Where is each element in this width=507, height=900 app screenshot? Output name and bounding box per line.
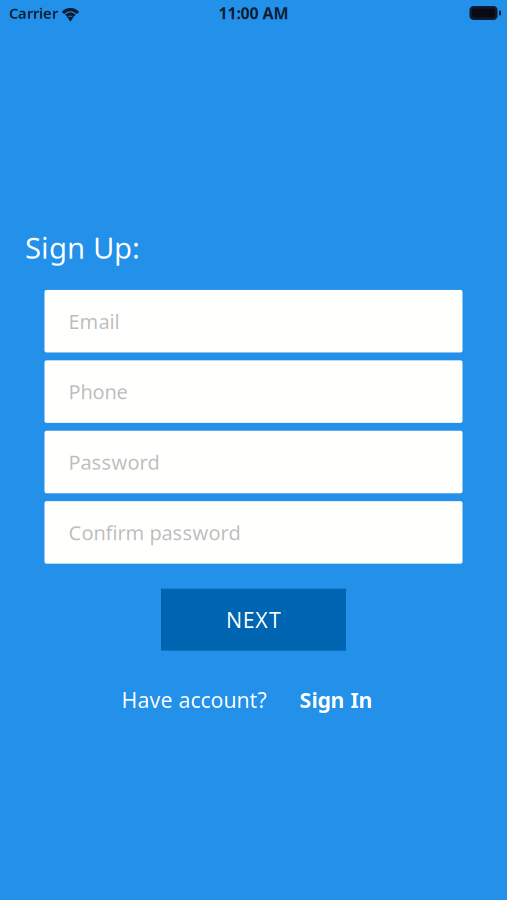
staticText: Email — [68, 308, 119, 334]
staticText: NEXT — [226, 605, 281, 634]
button[interactable]: Email — [44, 290, 462, 352]
button[interactable]: Phone — [44, 360, 462, 423]
button[interactable]: Sign In — [299, 686, 372, 714]
staticText: Confirm password — [68, 519, 240, 546]
button[interactable]: NEXT — [161, 589, 346, 651]
staticText: Have account? — [121, 686, 266, 714]
staticText: Phone — [68, 378, 127, 405]
staticText: 11:00 AM — [218, 2, 288, 24]
button[interactable]: Password — [44, 431, 462, 493]
staticText: Password — [68, 449, 159, 475]
staticText: Sign In — [299, 686, 372, 714]
staticText: Sign Up: — [25, 228, 140, 267]
staticText: Carrier — [9, 3, 58, 23]
button[interactable]: Confirm password — [44, 501, 462, 564]
